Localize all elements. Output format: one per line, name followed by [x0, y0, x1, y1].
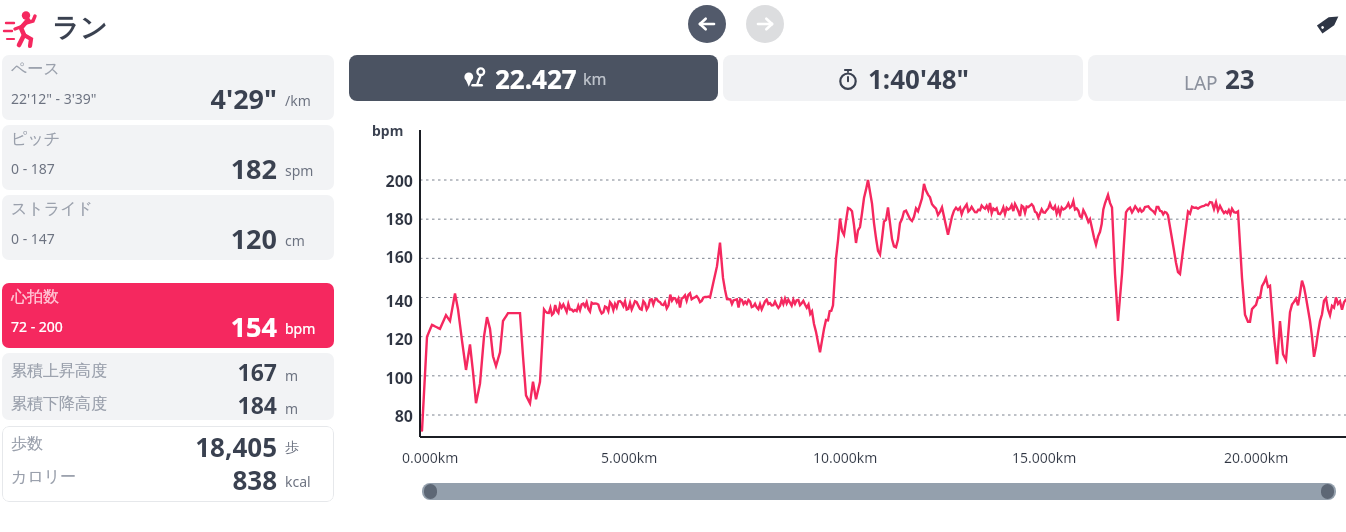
staticText: bpm: [285, 319, 330, 338]
staticText: 0.000km: [402, 448, 459, 467]
staticText: km: [583, 68, 607, 90]
staticText: kcal: [285, 472, 330, 491]
staticText: 120: [368, 328, 413, 350]
staticText: 23: [1225, 61, 1255, 96]
staticText: 10.000km: [813, 448, 878, 467]
staticText: 154: [152, 308, 277, 345]
staticText: ペース: [11, 59, 60, 79]
staticText: 0 - 187: [11, 159, 55, 178]
staticText: 140: [368, 290, 413, 312]
staticText: 1:40'48": [868, 61, 970, 96]
staticText: 120: [152, 220, 277, 257]
staticText: 72 - 200: [11, 317, 63, 336]
staticText: m: [285, 366, 330, 385]
staticText: カロリー: [11, 467, 77, 487]
staticText: 22'12" - 3'39": [11, 89, 97, 108]
staticText: bpm: [372, 121, 404, 140]
staticText: 180: [368, 208, 413, 230]
button[interactable]: [422, 483, 1336, 500]
staticText: 心拍数: [11, 287, 59, 307]
button[interactable]: ペース: [2, 55, 334, 120]
staticText: 4'29": [152, 80, 277, 117]
staticText: 184: [122, 389, 277, 420]
staticText: LAP: [1184, 70, 1218, 96]
staticText: 160: [368, 246, 413, 268]
button[interactable]: 心拍数: [2, 283, 334, 348]
button[interactable]: Next: [746, 5, 784, 43]
button[interactable]: 1:40'48": [723, 55, 1083, 101]
staticText: cm: [285, 231, 330, 250]
button[interactable]: ストライド: [2, 195, 334, 260]
staticText: 20.000km: [1224, 448, 1289, 467]
staticText: 80: [368, 405, 413, 427]
button[interactable]: ピッチ: [2, 125, 334, 190]
staticText: 18,405: [122, 429, 277, 464]
staticText: 838: [122, 462, 277, 497]
button[interactable]: 22.427: [349, 55, 718, 101]
staticText: 200: [368, 170, 413, 192]
staticText: 0 - 147: [11, 229, 55, 248]
staticText: 100: [368, 367, 413, 389]
button[interactable]: Tag: [1312, 6, 1346, 40]
staticText: m: [285, 399, 330, 418]
button[interactable]: 歩数: [2, 426, 334, 502]
staticText: 167: [122, 356, 277, 387]
button[interactable]: LAP: [1088, 55, 1346, 101]
staticText: 歩: [285, 439, 330, 457]
staticText: 22.427: [495, 61, 577, 96]
staticText: spm: [285, 161, 330, 180]
staticText: ストライド: [11, 199, 93, 219]
staticText: ラン: [52, 11, 108, 45]
staticText: 累積下降高度: [11, 394, 107, 414]
staticText: /km: [285, 91, 330, 110]
staticText: 累積上昇高度: [11, 361, 107, 381]
staticText: 5.000km: [601, 448, 658, 467]
button[interactable]: 累積上昇高度: [2, 353, 334, 420]
staticText: 182: [152, 150, 277, 187]
staticText: ピッチ: [11, 129, 61, 149]
staticText: 15.000km: [1012, 448, 1077, 467]
button[interactable]: Previous: [688, 5, 726, 43]
staticText: 歩数: [11, 434, 43, 454]
